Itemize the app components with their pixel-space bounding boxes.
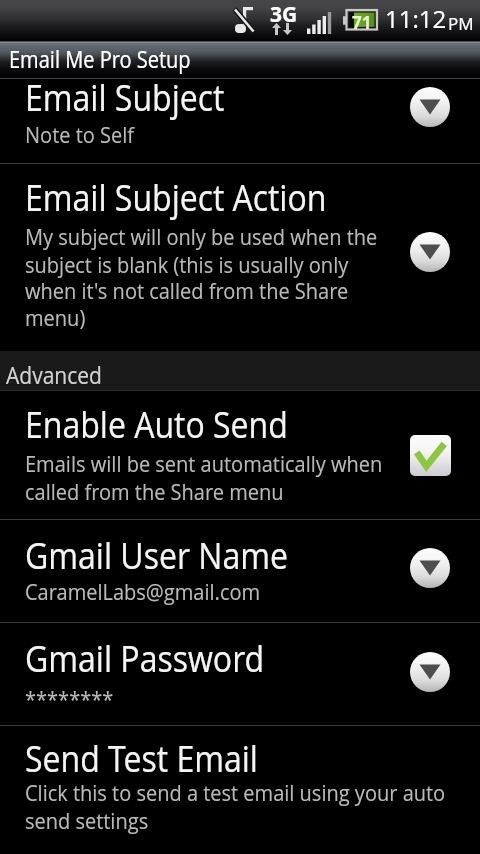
staticText: Gmail Password (25, 634, 265, 683)
button[interactable]: Send Test Email (0, 726, 480, 854)
staticText: Enable Auto Send (25, 400, 288, 449)
staticText: Email Subject Action (25, 173, 327, 222)
staticText: PM (448, 12, 474, 35)
staticText: Email Me Pro Setup (9, 42, 191, 75)
staticText: 71 (352, 11, 372, 34)
staticText: Email Subject (25, 79, 225, 122)
staticText: CaramelLabs@gmail.com (25, 576, 261, 606)
staticText: Note to Self (25, 119, 135, 149)
button[interactable]: Enable Auto Send (0, 391, 480, 519)
staticText: My subject will only be used when the su… (25, 221, 378, 333)
staticText: Send Test Email (25, 734, 258, 783)
staticText: Click this to send a test email using yo… (25, 777, 446, 835)
button[interactable]: Email Subject Action (0, 164, 480, 351)
staticText: Gmail User Name (25, 531, 288, 580)
other: Enable Auto Send (410, 435, 451, 476)
other: Open dialog (410, 548, 450, 588)
other: Open dialog (410, 232, 450, 272)
staticText: ******** (25, 683, 114, 713)
button[interactable]: Gmail Password (0, 623, 480, 725)
staticText: Advanced (6, 359, 102, 391)
staticText: Emails will be sent automatically when c… (25, 448, 383, 506)
other: Open dialog (410, 87, 450, 127)
button[interactable]: Email Subject (0, 79, 480, 163)
other: Open dialog (410, 652, 450, 692)
staticText: 11:12 (385, 2, 447, 35)
staticText: 3G (270, 0, 298, 29)
button[interactable]: Gmail User Name (0, 520, 480, 622)
